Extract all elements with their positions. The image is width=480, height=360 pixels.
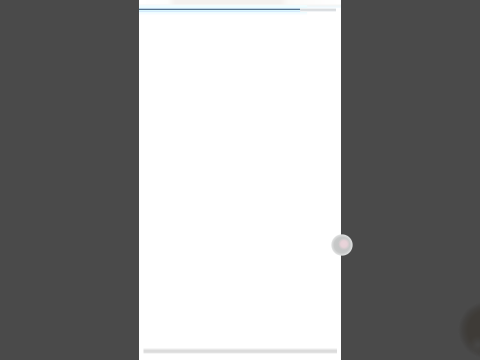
button[interactable]: Open quick action [330, 233, 354, 257]
